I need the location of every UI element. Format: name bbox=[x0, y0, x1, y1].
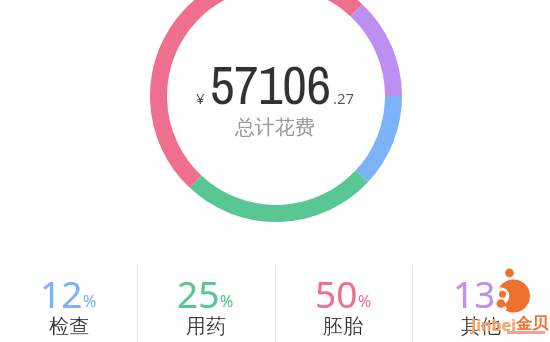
staticText: % bbox=[83, 290, 97, 312]
staticText: 用药 bbox=[186, 314, 226, 338]
staticText: 12 bbox=[40, 268, 83, 318]
staticText: 50 bbox=[315, 268, 358, 318]
staticText: 25 bbox=[177, 268, 220, 318]
staticText: 金贝 bbox=[516, 314, 548, 334]
staticText: 胚胎 bbox=[323, 314, 363, 338]
staticText: % bbox=[220, 290, 234, 312]
button[interactable]: 13 bbox=[412, 268, 550, 342]
staticText: % bbox=[496, 290, 510, 312]
button[interactable]: 50 bbox=[274, 268, 412, 342]
staticText: 检查 bbox=[49, 314, 89, 338]
staticText: Jinbei bbox=[471, 314, 516, 336]
button[interactable]: 25 bbox=[137, 268, 274, 342]
staticText: 57106 bbox=[210, 48, 331, 121]
staticText: 其他 bbox=[461, 314, 501, 338]
staticText: 13 bbox=[453, 268, 496, 318]
staticText: .27 bbox=[333, 88, 355, 108]
staticText: 总计花费 bbox=[235, 115, 315, 140]
staticText: ¥ bbox=[196, 88, 205, 108]
button[interactable]: 12 bbox=[0, 268, 137, 342]
staticText: % bbox=[358, 290, 372, 312]
